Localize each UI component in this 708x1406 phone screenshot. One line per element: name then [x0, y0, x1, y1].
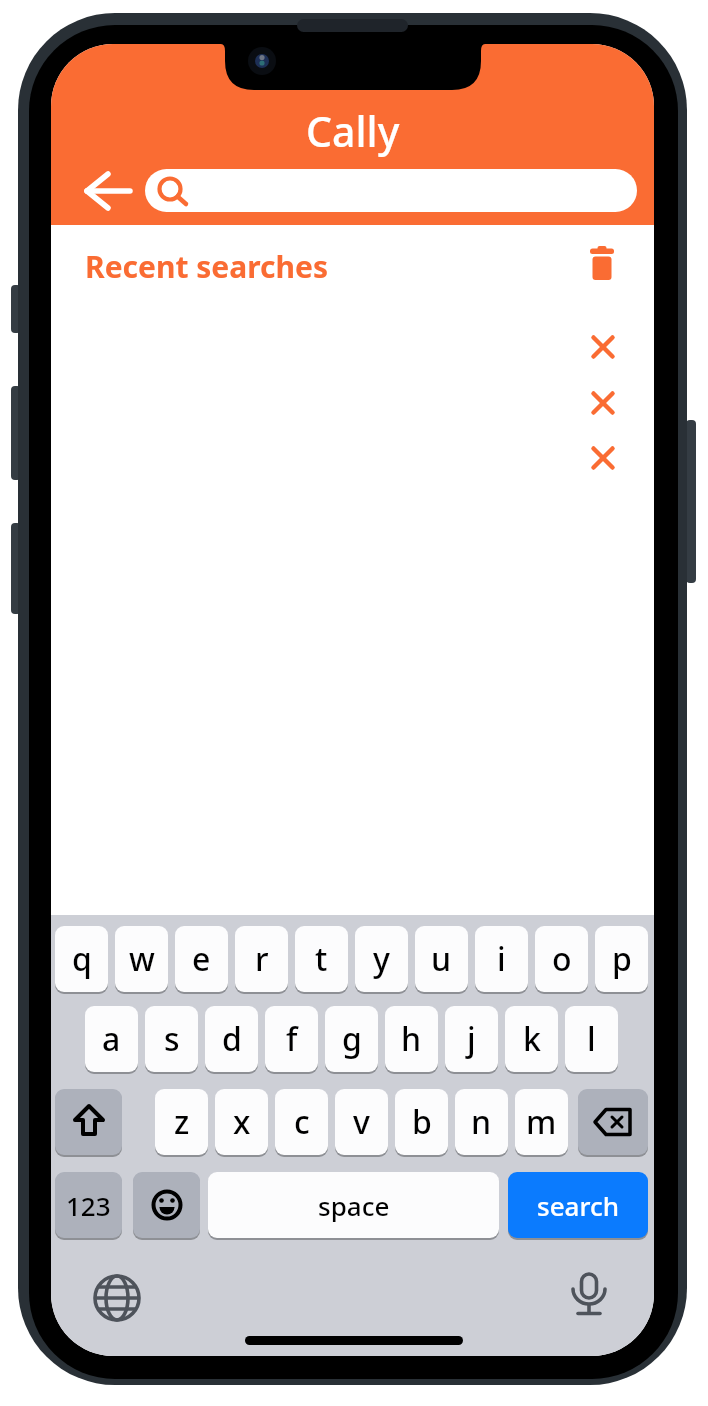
button[interactable]: y: [355, 926, 408, 992]
staticText: 123: [66, 1188, 111, 1223]
button[interactable]: [55, 1089, 122, 1155]
staticText: b: [412, 1100, 432, 1144]
button[interactable]: h: [385, 1006, 438, 1072]
button[interactable]: b: [395, 1089, 448, 1155]
button[interactable]: [568, 1272, 610, 1318]
button[interactable]: p: [595, 926, 648, 992]
staticText: t: [315, 937, 328, 981]
staticText: f: [286, 1017, 298, 1061]
staticText: g: [342, 1017, 362, 1061]
staticText: e: [192, 937, 211, 981]
button[interactable]: s: [145, 1006, 198, 1072]
button[interactable]: [145, 169, 637, 212]
staticText: q: [72, 937, 92, 981]
button[interactable]: t: [295, 926, 348, 992]
staticText: m: [526, 1100, 557, 1144]
button[interactable]: v: [335, 1089, 388, 1155]
button[interactable]: [593, 337, 613, 357]
button[interactable]: w: [115, 926, 168, 992]
button[interactable]: 123: [55, 1172, 122, 1238]
staticText: p: [612, 937, 632, 981]
button[interactable]: a: [85, 1006, 138, 1072]
button[interactable]: r: [235, 926, 288, 992]
button[interactable]: o: [535, 926, 588, 992]
staticText: u: [431, 937, 452, 981]
button[interactable]: [133, 1172, 200, 1238]
button[interactable]: g: [325, 1006, 378, 1072]
button[interactable]: z: [155, 1089, 208, 1155]
button[interactable]: [590, 246, 614, 280]
button[interactable]: d: [205, 1006, 258, 1072]
button[interactable]: e: [175, 926, 228, 992]
button[interactable]: m: [515, 1089, 568, 1155]
button[interactable]: l: [565, 1006, 618, 1072]
button[interactable]: k: [505, 1006, 558, 1072]
staticText: x: [233, 1100, 251, 1144]
staticText: z: [174, 1100, 190, 1144]
staticText: Recent searches: [85, 246, 328, 287]
button[interactable]: space: [208, 1172, 499, 1238]
button[interactable]: u: [415, 926, 468, 992]
button[interactable]: [578, 1089, 648, 1155]
staticText: v: [353, 1100, 370, 1144]
staticText: k: [523, 1017, 541, 1061]
button[interactable]: i: [475, 926, 528, 992]
button[interactable]: n: [455, 1089, 508, 1155]
staticText: Cally: [306, 103, 400, 159]
button[interactable]: q: [55, 926, 108, 992]
staticText: s: [164, 1017, 180, 1061]
button[interactable]: f: [265, 1006, 318, 1072]
staticText: o: [552, 937, 572, 981]
button[interactable]: [93, 1274, 141, 1322]
staticText: y: [373, 937, 390, 981]
staticText: j: [467, 1017, 476, 1061]
staticText: a: [102, 1017, 121, 1061]
button[interactable]: search: [508, 1172, 648, 1238]
staticText: d: [222, 1017, 242, 1061]
staticText: search: [537, 1188, 619, 1223]
button[interactable]: j: [445, 1006, 498, 1072]
staticText: i: [497, 937, 506, 981]
button[interactable]: [84, 165, 132, 217]
staticText: r: [255, 937, 269, 981]
staticText: space: [318, 1188, 390, 1223]
staticText: c: [294, 1100, 310, 1144]
staticText: l: [587, 1017, 596, 1061]
staticText: n: [471, 1100, 492, 1144]
staticText: w: [129, 937, 155, 981]
button[interactable]: [593, 448, 613, 468]
button[interactable]: c: [275, 1089, 328, 1155]
button[interactable]: [593, 393, 613, 413]
staticText: h: [401, 1017, 422, 1061]
button[interactable]: x: [215, 1089, 268, 1155]
